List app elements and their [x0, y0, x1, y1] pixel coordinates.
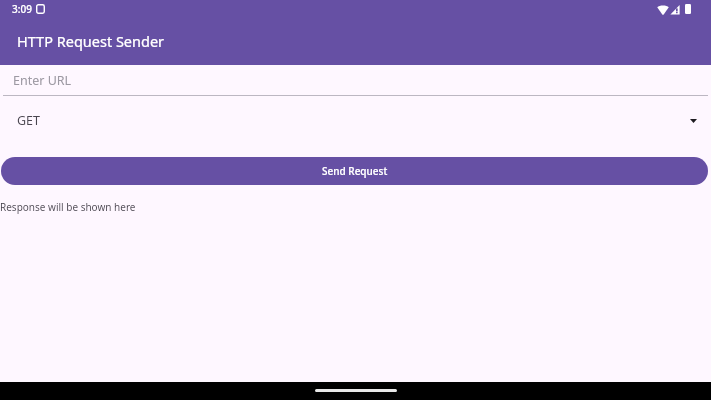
button[interactable]: GET: [0, 97, 711, 145]
staticText: GET: [17, 112, 41, 129]
staticText: Send Request: [322, 164, 388, 178]
staticText: HTTP Request Sender: [17, 31, 165, 51]
button[interactable]: Enter URL: [0, 65, 711, 96]
staticText: Enter URL: [13, 72, 72, 89]
other: Battery: [685, 4, 691, 14]
other: Screen recording: [36, 4, 45, 14]
other: Mobile signal: [670, 4, 680, 15]
staticText: 3:09: [12, 2, 32, 16]
other: Expand method list: [690, 119, 697, 123]
staticText: Response will be shown here: [0, 200, 136, 214]
button[interactable]: Send Request: [1, 157, 708, 185]
other: Wi-Fi: [657, 4, 669, 15]
